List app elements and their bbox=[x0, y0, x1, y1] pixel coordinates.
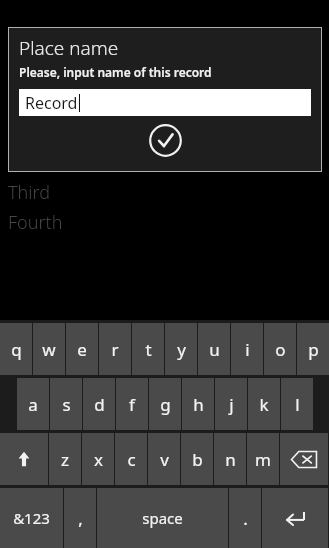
staticText: h bbox=[193, 393, 204, 416]
staticText: t bbox=[145, 338, 152, 361]
button[interactable]: y bbox=[165, 323, 197, 375]
button[interactable]: , bbox=[64, 488, 96, 548]
button[interactable]: space bbox=[97, 488, 228, 548]
staticText: e bbox=[77, 338, 87, 361]
staticText: n bbox=[225, 448, 236, 471]
staticText: &123 bbox=[13, 508, 50, 528]
staticText: d bbox=[94, 393, 105, 416]
staticText: p bbox=[308, 338, 319, 361]
staticText: j bbox=[229, 393, 234, 416]
staticText: space bbox=[142, 508, 183, 528]
button[interactable]: i bbox=[231, 323, 263, 375]
button[interactable]: a bbox=[17, 378, 49, 430]
button[interactable]: Enter bbox=[262, 488, 328, 548]
staticText: y bbox=[177, 338, 186, 361]
button[interactable]: b bbox=[181, 433, 213, 485]
button[interactable]: m bbox=[247, 433, 279, 485]
staticText: u bbox=[209, 338, 220, 361]
staticText: . bbox=[243, 507, 248, 530]
button[interactable]: h bbox=[182, 378, 214, 430]
button[interactable]: s bbox=[50, 378, 82, 430]
button[interactable]: l bbox=[281, 378, 313, 430]
staticText: o bbox=[275, 338, 286, 361]
staticText: i bbox=[245, 338, 250, 361]
button[interactable]: w bbox=[33, 323, 65, 375]
staticText: Please, input name of this record bbox=[19, 64, 212, 80]
staticText: Place name bbox=[19, 35, 119, 61]
button[interactable]: Confirm bbox=[149, 124, 182, 157]
button[interactable]: r bbox=[99, 323, 131, 375]
staticText: m bbox=[255, 448, 271, 471]
staticText: g bbox=[160, 393, 171, 416]
button[interactable]: Shift bbox=[0, 433, 48, 485]
staticText: z bbox=[61, 448, 69, 471]
button[interactable]: Backspace bbox=[280, 433, 328, 485]
button[interactable]: n bbox=[214, 433, 246, 485]
button[interactable]: j bbox=[215, 378, 247, 430]
button[interactable]: &123 bbox=[0, 488, 63, 548]
staticText: , bbox=[78, 507, 83, 530]
button[interactable]: k bbox=[248, 378, 280, 430]
staticText: q bbox=[11, 338, 22, 361]
button[interactable]: Fourth bbox=[8, 210, 63, 235]
button[interactable]: g bbox=[149, 378, 181, 430]
staticText: a bbox=[28, 393, 38, 416]
button[interactable]: q bbox=[0, 323, 32, 375]
button[interactable]: f bbox=[116, 378, 148, 430]
button[interactable]: c bbox=[115, 433, 147, 485]
staticText: v bbox=[160, 448, 169, 471]
button[interactable]: Third bbox=[8, 180, 50, 205]
button[interactable]: u bbox=[198, 323, 230, 375]
staticText: f bbox=[129, 393, 135, 416]
button[interactable]: . bbox=[229, 488, 261, 548]
staticText: r bbox=[111, 338, 119, 361]
staticText: b bbox=[192, 448, 203, 471]
button[interactable]: z bbox=[49, 433, 81, 485]
staticText: l bbox=[295, 393, 300, 416]
button[interactable]: v bbox=[148, 433, 180, 485]
staticText: s bbox=[62, 393, 71, 416]
button[interactable]: t bbox=[132, 323, 164, 375]
staticText: x bbox=[94, 448, 103, 471]
button[interactable]: o bbox=[264, 323, 296, 375]
staticText: w bbox=[42, 338, 56, 361]
button[interactable]: d bbox=[83, 378, 115, 430]
staticText: Record bbox=[25, 92, 78, 114]
staticText: c bbox=[127, 448, 136, 471]
button[interactable]: x bbox=[82, 433, 114, 485]
button[interactable]: e bbox=[66, 323, 98, 375]
staticText: k bbox=[259, 393, 269, 416]
button[interactable]: Record bbox=[19, 89, 311, 116]
button[interactable]: p bbox=[297, 323, 329, 375]
